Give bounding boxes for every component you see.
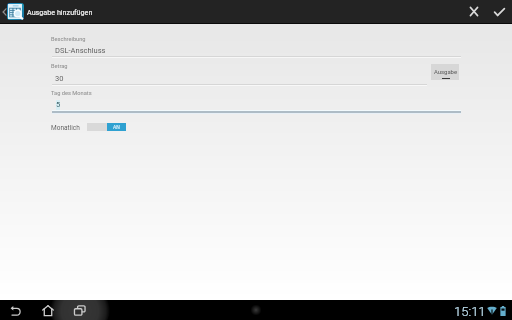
button[interactable]: 15:11 xyxy=(450,300,512,320)
staticText: Monatlich xyxy=(51,124,80,132)
staticText: 30 xyxy=(55,74,64,83)
staticText: AN xyxy=(113,124,120,130)
staticText: DSL-Anschluss xyxy=(55,46,106,55)
staticText: Ausgabe xyxy=(434,69,458,76)
button[interactable]: AN xyxy=(87,123,126,131)
button[interactable]: Navigate up xyxy=(0,0,99,23)
staticText: Beschreibung xyxy=(51,36,86,43)
button[interactable]: Home xyxy=(37,304,58,316)
button[interactable]: Done xyxy=(487,0,512,23)
button[interactable]: Back xyxy=(5,304,26,316)
staticText: Betrag xyxy=(51,63,68,70)
staticText: Ausgabe hinzufügen xyxy=(27,8,93,16)
staticText: 15:11 xyxy=(454,304,486,319)
button[interactable]: Ausgabe xyxy=(431,64,459,80)
button[interactable]: Cancel xyxy=(461,0,486,23)
staticText: 5 xyxy=(56,100,61,109)
button[interactable]: Recent apps xyxy=(69,304,91,316)
staticText: Tag des Monats xyxy=(51,90,92,97)
